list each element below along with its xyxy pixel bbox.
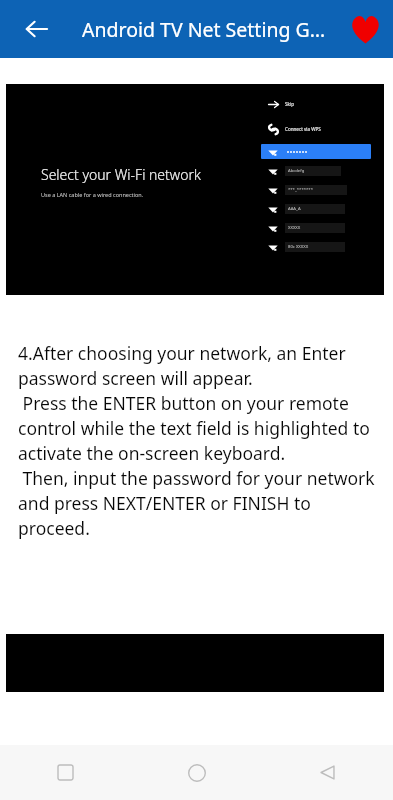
- staticText: ***_*******: [288, 187, 313, 193]
- staticText: 80c XXXXX: [288, 244, 309, 250]
- button[interactable]: XXXXX: [261, 220, 371, 235]
- staticText: 4.After choosing your network, an Enter …: [18, 341, 379, 540]
- staticText: Use a LAN cable for a wired connection.: [41, 191, 144, 198]
- button[interactable]: AAA_A: [261, 201, 371, 216]
- staticText: Select your Wi-Fi network: [41, 165, 201, 184]
- staticText: Android TV Net Setting G…: [82, 16, 326, 43]
- button[interactable]: Recent apps: [0, 745, 131, 800]
- button[interactable]: Favorite: [343, 7, 387, 51]
- button[interactable]: ***_*******: [261, 182, 371, 197]
- button[interactable]: 80c XXXXX: [261, 239, 371, 254]
- button[interactable]: Home: [131, 745, 262, 800]
- button[interactable]: Back: [262, 745, 393, 800]
- button[interactable]: Abcdefg: [261, 163, 371, 178]
- button[interactable]: Back: [14, 6, 60, 52]
- staticText: Connect via WPS: [285, 126, 321, 132]
- button[interactable]: [261, 144, 371, 159]
- staticText: Skip: [285, 101, 294, 107]
- staticText: Abcdefg: [288, 168, 305, 174]
- staticText: XXXXX: [288, 225, 301, 231]
- staticText: AAA_A: [288, 206, 301, 212]
